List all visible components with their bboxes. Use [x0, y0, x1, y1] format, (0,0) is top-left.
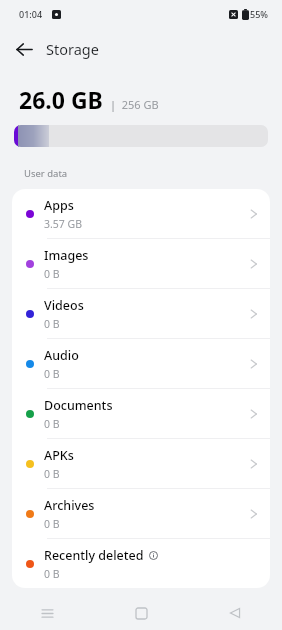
staticText: 55%	[250, 8, 268, 20]
staticText: Audio	[44, 347, 79, 364]
button[interactable]: APKs	[12, 439, 270, 488]
staticText: 0 B	[44, 467, 60, 481]
button[interactable]: Images	[12, 239, 270, 288]
button[interactable]: Documents	[12, 389, 270, 438]
staticText: 26.0 GB	[19, 84, 103, 115]
staticText: 0 B	[44, 417, 60, 431]
button[interactable]: Recently deleted	[12, 539, 270, 588]
staticText: Recently deleted	[44, 547, 144, 564]
staticText: 0 B	[44, 317, 60, 331]
button[interactable]: Archives	[12, 489, 270, 538]
staticText: Documents	[44, 397, 113, 414]
staticText: 0 B	[44, 367, 60, 381]
button[interactable]: Audio	[12, 339, 270, 388]
staticText: Images	[44, 247, 89, 264]
staticText: | 256 GB	[110, 97, 159, 112]
staticText: 0 B	[44, 267, 60, 281]
staticText: 0 B	[44, 517, 60, 531]
staticText: Archives	[44, 497, 95, 514]
staticText: 3.57 GB	[44, 217, 83, 231]
staticText: User data	[24, 167, 68, 180]
staticText: Storage	[46, 39, 99, 59]
button[interactable]: Back	[188, 596, 282, 630]
staticText: APKs	[44, 447, 74, 464]
staticText: 0 B	[44, 567, 60, 581]
button[interactable]: Home	[94, 596, 188, 630]
staticText: Apps	[44, 197, 74, 214]
staticText: Videos	[44, 297, 84, 314]
button[interactable]: Back	[7, 32, 41, 66]
staticText: 01:04	[19, 8, 43, 20]
button[interactable]: Recent apps	[0, 596, 94, 630]
button[interactable]: Videos	[12, 289, 270, 338]
button[interactable]: Apps	[12, 189, 270, 238]
